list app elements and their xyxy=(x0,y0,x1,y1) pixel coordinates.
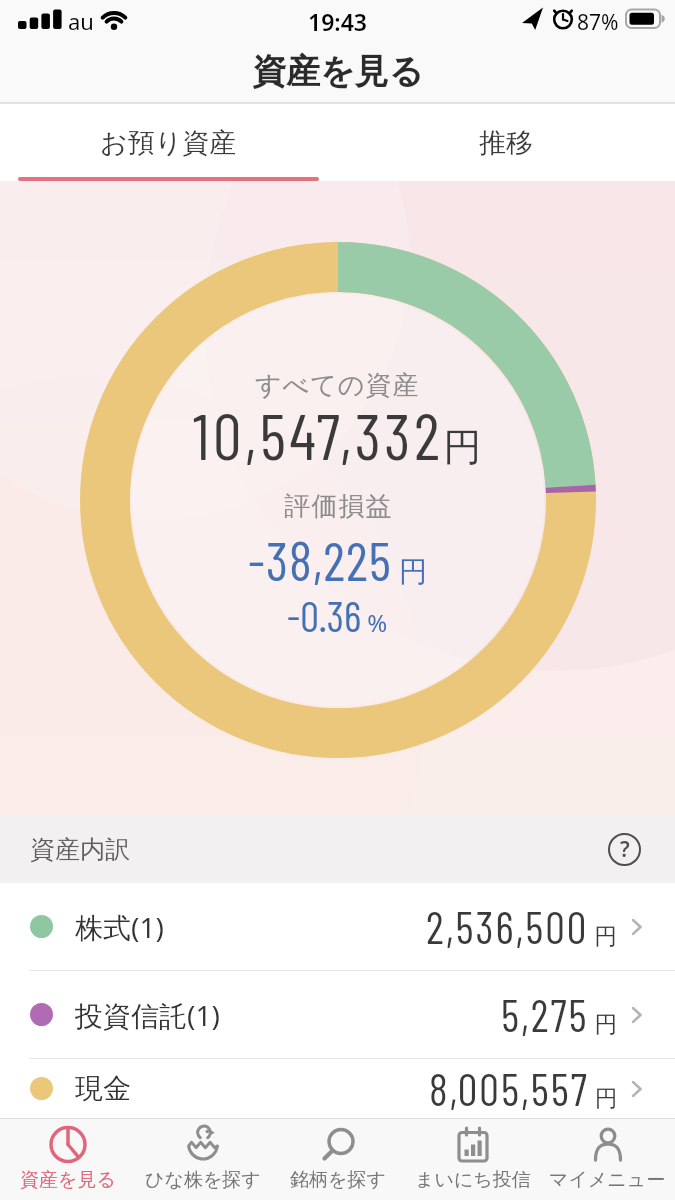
button[interactable]: 銘柄を探す xyxy=(270,1119,405,1200)
button[interactable]: 資産を見る xyxy=(0,1119,135,1200)
staticText: ひな株を探す xyxy=(145,1168,261,1192)
staticText: まいにち投信 xyxy=(415,1168,531,1192)
staticText: 8,005,557 円 xyxy=(429,1062,618,1115)
staticText: 資産を見る xyxy=(20,1168,116,1192)
button[interactable]: マイメニュー xyxy=(540,1119,675,1200)
staticText: マイメニュー xyxy=(549,1168,666,1192)
button[interactable]: 推移 xyxy=(337,104,675,181)
button[interactable]: 株式(1) xyxy=(30,883,644,970)
staticText: 資産を見る xyxy=(252,50,424,93)
staticText: 現金 xyxy=(75,1071,131,1106)
staticText: 10,547,332円 xyxy=(193,396,482,473)
staticText: -38,225 円 xyxy=(248,527,428,592)
staticText: 推移 xyxy=(479,126,533,160)
staticText: すべての資産 xyxy=(255,369,420,402)
staticText: お預り資産 xyxy=(100,126,237,160)
staticText: 評価損益 xyxy=(284,490,392,523)
button[interactable]: お預り資産 xyxy=(0,104,337,181)
button[interactable]: ひな株を探す xyxy=(135,1119,270,1200)
button[interactable]: 投資信託(1) xyxy=(30,971,644,1058)
staticText: 資産内訳 xyxy=(30,834,130,865)
staticText: 2,536,500 円 xyxy=(426,900,618,953)
staticText: 株式(1) xyxy=(75,908,164,946)
staticText: 19:43 xyxy=(308,6,367,37)
staticText: 投資信託(1) xyxy=(75,996,220,1034)
staticText: -0.36 % xyxy=(287,590,388,640)
button[interactable]: 現金 xyxy=(30,1059,644,1118)
staticText: 5,275 円 xyxy=(501,988,618,1041)
staticText: ? xyxy=(620,835,630,864)
staticText: au xyxy=(68,6,94,36)
staticText: 銘柄を探す xyxy=(290,1168,386,1192)
staticText: 87% xyxy=(577,8,619,37)
button[interactable]: まいにち投信 xyxy=(405,1119,540,1200)
button[interactable]: ? xyxy=(608,833,641,866)
